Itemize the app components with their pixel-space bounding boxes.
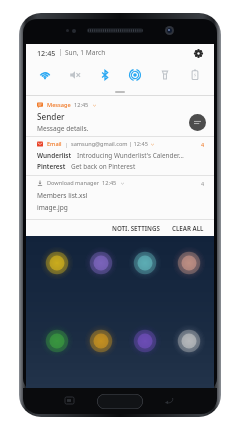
button[interactable]: Sound off — [60, 61, 90, 88]
button[interactable]: App — [172, 324, 206, 358]
staticText: 4 — [201, 141, 205, 148]
button[interactable]: App — [40, 324, 74, 358]
staticText: Wunderlist — [37, 151, 72, 160]
staticText: samsung@gmail.com | 12:45 — [71, 140, 148, 148]
staticText: Pinterest — [37, 162, 66, 171]
staticText: 12:45 — [37, 48, 56, 58]
button[interactable]: App — [40, 246, 74, 280]
staticText: 4 — [201, 180, 205, 187]
button[interactable]: Power mode — [180, 61, 210, 88]
button[interactable]: CLEAR ALL — [166, 221, 214, 235]
staticText: Sun, 1 March — [65, 48, 106, 57]
staticText: Email — [47, 140, 62, 148]
button[interactable]: App — [84, 324, 118, 358]
button[interactable]: Bluetooth — [90, 61, 120, 88]
button[interactable]: Home — [97, 394, 143, 409]
button[interactable]: NOTI. SETTINGS — [106, 221, 166, 235]
button[interactable]: Recents — [65, 397, 74, 404]
staticText: Message — [47, 101, 71, 109]
button[interactable]: Email — [26, 137, 214, 175]
staticText: Get back on Pinterest — [71, 162, 136, 171]
staticText: | — [65, 141, 68, 148]
staticText: NOTI. SETTINGS — [112, 224, 160, 232]
button[interactable]: Location — [120, 61, 150, 88]
staticText: Download manager — [47, 179, 99, 187]
button[interactable]: App — [172, 246, 206, 280]
staticText: Introducing Wunderlist's Calender… — [77, 151, 184, 160]
button[interactable]: App — [128, 246, 162, 280]
button[interactable]: App — [84, 246, 118, 280]
button[interactable]: Back — [165, 397, 174, 404]
staticText: 12:45 — [102, 179, 117, 187]
button[interactable]: Wi-Fi — [30, 61, 60, 88]
staticText: image.jpg — [37, 203, 68, 212]
staticText: Message details. — [37, 124, 89, 133]
staticText: CLEAR ALL — [172, 224, 204, 232]
button[interactable]: Reply — [189, 114, 206, 131]
staticText: Members list.xsl — [37, 191, 88, 200]
button[interactable]: Flashlight — [150, 61, 180, 88]
button[interactable]: Settings — [191, 46, 205, 60]
staticText: Sender — [37, 111, 65, 122]
button[interactable]: App — [128, 324, 162, 358]
button[interactable]: Message — [26, 99, 214, 136]
button[interactable]: Download manager — [26, 176, 214, 212]
staticText: 12:45 — [74, 101, 89, 109]
